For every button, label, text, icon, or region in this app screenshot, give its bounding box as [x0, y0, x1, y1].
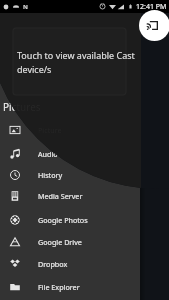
staticText: History: [38, 170, 63, 180]
staticText: History: [38, 170, 63, 180]
staticText: Google Drive: [38, 237, 82, 247]
staticText: Google Drive: [38, 237, 82, 247]
button[interactable]: Media Server: [0, 185, 139, 207]
button[interactable]: Audio: [0, 143, 139, 165]
button[interactable]: Media Server: [0, 185, 139, 207]
staticText: Audio: [38, 149, 58, 159]
staticText: Media Server: [38, 191, 83, 201]
button[interactable]: Google Drive: [0, 231, 139, 253]
button[interactable]: File Explorer: [0, 276, 139, 298]
staticText: File Explorer: [38, 282, 80, 292]
button[interactable]: File Explorer: [0, 276, 139, 298]
button[interactable]: Google Photos: [0, 209, 139, 231]
staticText: 12:41 PM: [136, 2, 167, 12]
button[interactable]: Dropbox: [0, 253, 139, 275]
button[interactable]: Audio: [0, 143, 139, 165]
staticText: Dropbox: [38, 259, 68, 269]
staticText: Pictures: [3, 100, 41, 114]
staticText: Audio: [38, 149, 58, 159]
staticText: Dropbox: [38, 259, 68, 269]
staticText: Media Server: [38, 191, 83, 201]
button[interactable]: Google Drive: [0, 231, 139, 253]
button[interactable]: Cast: [139, 10, 169, 41]
button[interactable]: Google Photos: [0, 209, 139, 231]
button[interactable]: Picture: [0, 119, 139, 141]
staticText: File Explorer: [38, 282, 80, 292]
staticText: Touch to view available Cast device/s: [17, 49, 135, 76]
button[interactable]: Picture: [0, 119, 139, 141]
staticText: Google Photos: [38, 215, 88, 225]
button[interactable]: History: [0, 164, 139, 186]
staticText: N: [23, 3, 28, 11]
button[interactable]: History: [0, 164, 139, 186]
button[interactable]: Dropbox: [0, 253, 139, 275]
staticText: Google Photos: [38, 215, 88, 225]
staticText: Pictures: [3, 100, 41, 114]
